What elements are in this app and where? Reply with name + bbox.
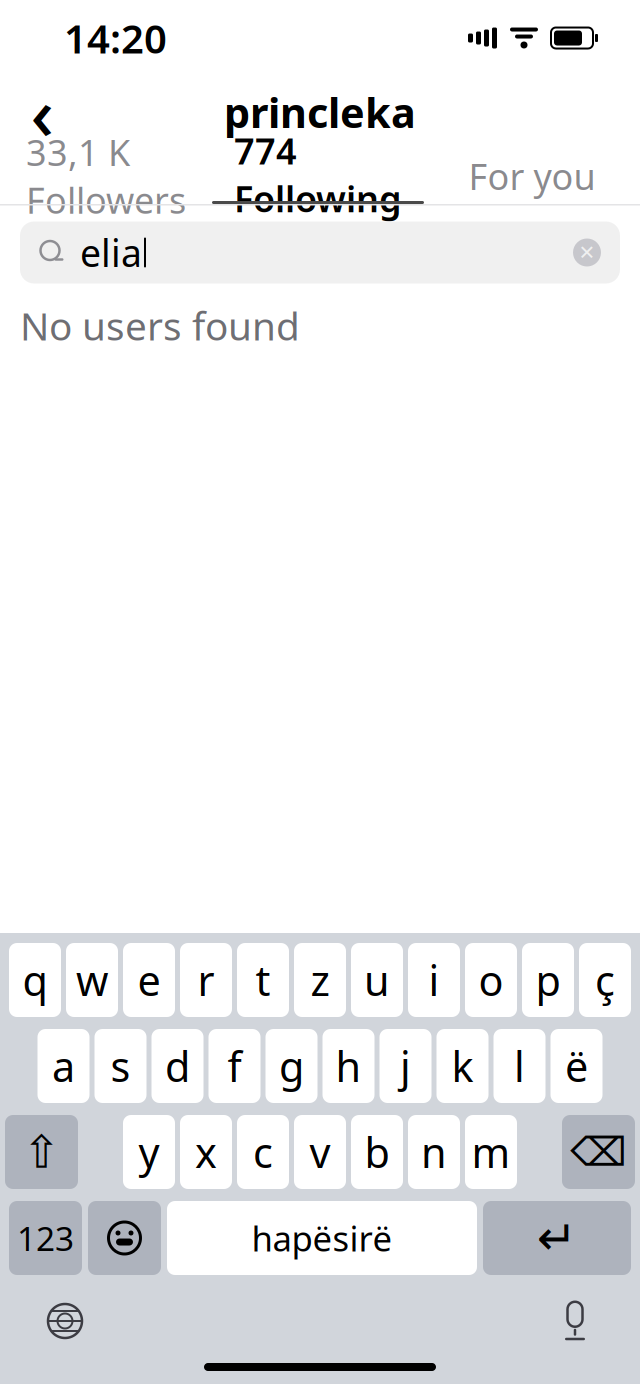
button[interactable]: b [351, 1115, 403, 1189]
staticText: ‹ [30, 64, 53, 160]
button[interactable]: 774 Following [212, 148, 424, 204]
staticText: f [227, 1039, 241, 1093]
button[interactable]: l [493, 1029, 545, 1103]
button[interactable]: g [265, 1029, 317, 1103]
button[interactable]: y [123, 1115, 175, 1189]
button[interactable]: u [351, 943, 403, 1017]
button[interactable]: j [379, 1029, 431, 1103]
staticText: ⌫ [570, 1129, 627, 1175]
staticText: elia [80, 228, 142, 277]
staticText: No users found [20, 300, 300, 351]
button[interactable]: c [237, 1115, 289, 1189]
button[interactable]: m [465, 1115, 517, 1189]
staticText: hapësirë [251, 1215, 392, 1261]
button[interactable]: Dictation [540, 1291, 610, 1351]
button[interactable]: v [294, 1115, 346, 1189]
button[interactable]: d [151, 1029, 203, 1103]
button[interactable]: z [294, 943, 346, 1017]
button[interactable]: h [322, 1029, 374, 1103]
staticText: s [110, 1039, 130, 1093]
button[interactable]: a [37, 1029, 89, 1103]
button[interactable]: Numbers [9, 1201, 82, 1275]
button[interactable]: Space [167, 1201, 477, 1275]
staticText: princleka [224, 85, 416, 139]
button[interactable]: 33,1 K Followers [0, 148, 212, 204]
staticText: t [255, 953, 270, 1007]
staticText: ë [565, 1039, 588, 1093]
button[interactable]: Clear search [566, 231, 608, 273]
button[interactable]: For you [424, 148, 640, 204]
staticText: For you [468, 152, 595, 200]
staticText: e [137, 953, 160, 1007]
button[interactable]: Emoji [88, 1201, 161, 1275]
button[interactable]: t [237, 943, 289, 1017]
button[interactable]: ç [579, 943, 631, 1017]
staticText: v [309, 1125, 330, 1179]
staticText: a [52, 1039, 75, 1093]
button[interactable]: Delete [562, 1115, 635, 1189]
staticText: c [253, 1125, 273, 1179]
button[interactable]: Next keyboard [30, 1291, 100, 1351]
button[interactable]: Shift [5, 1115, 78, 1189]
staticText: ✕ [578, 241, 595, 264]
staticText: j [400, 1039, 411, 1093]
staticText: n [421, 1125, 447, 1179]
staticText: 14:20 [64, 11, 167, 64]
staticText: g [279, 1039, 304, 1093]
staticText: u [364, 953, 390, 1007]
staticText: p [535, 953, 560, 1007]
button[interactable]: w [66, 943, 118, 1017]
button[interactable]: ë [550, 1029, 602, 1103]
staticText: d [165, 1039, 190, 1093]
staticText: 33,1 K Followers [26, 128, 186, 224]
button[interactable]: Return [483, 1201, 631, 1275]
staticText: w [76, 953, 108, 1007]
staticText: 123 [17, 1216, 74, 1260]
staticText: k [451, 1039, 473, 1093]
button[interactable]: e [123, 943, 175, 1017]
button[interactable]: s [94, 1029, 146, 1103]
staticText: ç [595, 953, 615, 1007]
staticText: 774 Following [234, 127, 402, 222]
button[interactable]: q [9, 943, 61, 1017]
staticText: m [471, 1125, 510, 1179]
button[interactable]: k [436, 1029, 488, 1103]
button[interactable]: r [180, 943, 232, 1017]
staticText: q [22, 953, 47, 1007]
button[interactable]: p [522, 943, 574, 1017]
staticText: ⇧ [22, 1126, 60, 1178]
staticText: x [195, 1125, 217, 1179]
button[interactable]: f [208, 1029, 260, 1103]
staticText: r [197, 953, 214, 1007]
button[interactable]: n [408, 1115, 460, 1189]
staticText: o [478, 953, 503, 1007]
button[interactable]: i [408, 943, 460, 1017]
staticText: i [428, 953, 439, 1007]
staticText: h [335, 1039, 361, 1093]
button[interactable]: Back [6, 79, 78, 145]
staticText: ↵ [537, 1211, 577, 1265]
button[interactable]: o [465, 943, 517, 1017]
staticText: b [364, 1125, 389, 1179]
staticText: z [310, 953, 329, 1007]
button[interactable]: x [180, 1115, 232, 1189]
staticText: y [138, 1125, 159, 1179]
staticText: l [514, 1039, 525, 1093]
